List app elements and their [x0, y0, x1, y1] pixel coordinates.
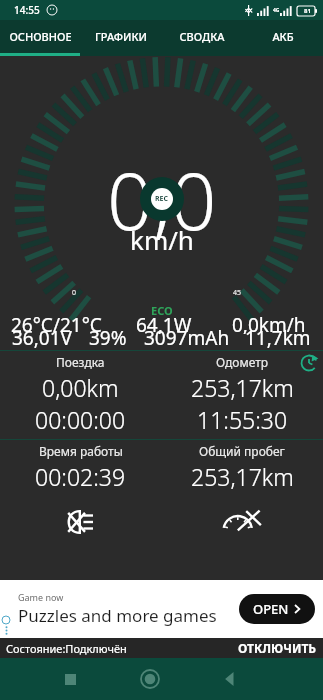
staticText: ОСНОВНОЕ [9, 29, 72, 44]
button[interactable]: Одометр [161, 351, 323, 439]
staticText: ECO [151, 303, 173, 318]
staticText: 45 [233, 288, 242, 298]
staticText: 81 [304, 7, 311, 15]
button[interactable]: Время работы [0, 440, 161, 498]
staticText: km/h [130, 222, 194, 257]
button[interactable]: Record [140, 177, 184, 221]
staticText: ОТКЛЮЧИТЬ [238, 640, 317, 656]
button[interactable]: АКБ [242, 20, 323, 53]
staticText: 4G [273, 7, 280, 14]
staticText: OPEN [253, 600, 289, 618]
button[interactable]: Back [213, 662, 247, 696]
staticText: 253,17km [191, 372, 294, 403]
staticText: СВОДКА [179, 29, 225, 44]
staticText: Поездка [56, 354, 105, 370]
staticText: Game now [18, 591, 64, 603]
staticText: АКБ [272, 29, 294, 44]
staticText: 0,0km/h [232, 312, 306, 334]
button[interactable]: Cruise control off [161, 498, 323, 546]
staticText: 0,0 [107, 144, 217, 253]
staticText: 64,1W [136, 312, 192, 334]
button[interactable]: ОТКЛЮЧИТЬ [238, 640, 317, 656]
staticText: 11:55:30 [197, 404, 288, 435]
staticText: ГРАФИКИ [95, 29, 147, 44]
staticText: 36,01V [12, 325, 72, 350]
staticText: 00:00:00 [35, 404, 126, 435]
staticText: Puzzles and more games [18, 604, 217, 627]
staticText: 3097mAh [144, 325, 230, 350]
staticText: 0,00km [42, 372, 119, 403]
staticText: Время работы [39, 443, 123, 459]
staticText: Состояние:Подключён [6, 641, 127, 656]
button[interactable]: ГРАФИКИ [80, 20, 161, 53]
staticText: 14:55 [14, 3, 40, 17]
staticText: 00:02:39 [35, 461, 126, 492]
button[interactable]: Общий пробег [161, 440, 323, 498]
button[interactable]: History [298, 352, 320, 374]
button[interactable]: Recents [53, 662, 87, 696]
button[interactable]: Поездка [0, 351, 161, 439]
button[interactable]: ОСНОВНОЕ [0, 20, 80, 53]
staticText: 26°C/21°C [11, 312, 102, 334]
staticText: 11,7km [245, 325, 311, 350]
button[interactable]: Headlight off [0, 498, 161, 546]
button[interactable]: OPEN [239, 594, 315, 624]
staticText: Одометр [216, 354, 269, 370]
staticText: 39% [89, 325, 127, 350]
button[interactable]: СВОДКА [161, 20, 242, 53]
button[interactable]: Home [133, 662, 167, 696]
staticText: REC [155, 194, 169, 204]
staticText: 0 [72, 288, 77, 298]
staticText: 253,17km [191, 461, 294, 492]
staticText: Общий пробег [199, 443, 285, 459]
